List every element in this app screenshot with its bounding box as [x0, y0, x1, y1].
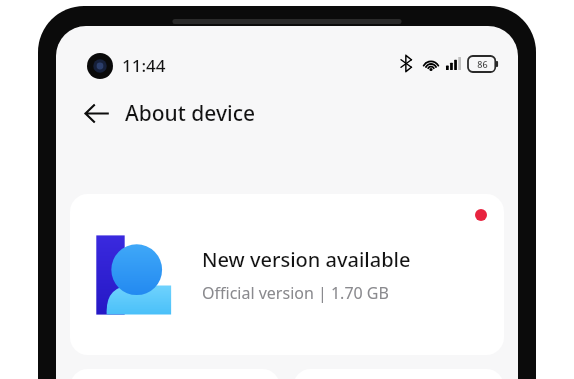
- button[interactable]: New version available: [70, 194, 504, 355]
- staticText: New version available: [202, 246, 411, 273]
- staticText: Official version | 1.70 GB: [202, 282, 389, 304]
- button[interactable]: Back: [72, 89, 120, 137]
- staticText: About device: [125, 99, 256, 128]
- staticText: 86: [477, 58, 488, 70]
- staticText: 11:44: [122, 54, 166, 77]
- other: Front camera: [87, 53, 113, 79]
